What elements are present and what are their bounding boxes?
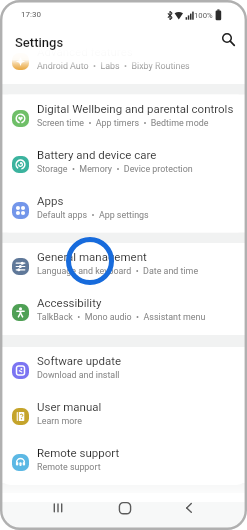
staticText: Accessibility (37, 296, 102, 309)
button[interactable]: Software update (0, 347, 247, 393)
button[interactable] (175, 496, 203, 522)
staticText: 100% (194, 11, 213, 20)
button[interactable]: User manual (0, 393, 247, 439)
staticText: 17:30 (21, 10, 41, 19)
staticText: Storage • Memory • Device protection (37, 164, 193, 174)
button[interactable]: Digital Wellbeing and parental controls (0, 95, 247, 141)
staticText: Download and install (37, 370, 120, 380)
staticText: Android Auto • Labs • Bixby Routines (37, 61, 190, 71)
staticText: TalkBack • Mono audio • Assistant menu (37, 312, 206, 322)
button[interactable]: About phone (0, 494, 247, 530)
button[interactable] (44, 496, 72, 522)
staticText: Software update (37, 354, 122, 367)
button[interactable] (217, 28, 239, 50)
staticText: Battery and device care (37, 148, 157, 161)
button[interactable]: Accessibility (0, 289, 247, 335)
staticText: Settings (15, 35, 64, 50)
button[interactable]: General management (0, 243, 247, 289)
staticText: Screen time • App timers • Bedtime mode (37, 118, 209, 128)
staticText: Learn more (37, 416, 82, 426)
button[interactable]: Advanced features (0, 38, 247, 84)
staticText: Default apps • App settings (37, 210, 149, 220)
button[interactable]: Battery and device care (0, 141, 247, 187)
staticText: Language and keyboard • Date and time (37, 266, 199, 276)
staticText: Remote support (37, 462, 101, 472)
button[interactable]: Apps (0, 187, 247, 233)
staticText: Apps (37, 194, 64, 207)
button[interactable]: Remote support (0, 439, 247, 485)
staticText: Advanced features (37, 45, 133, 58)
staticText: Digital Wellbeing and parental controls (37, 102, 234, 115)
button[interactable] (111, 496, 139, 522)
staticText: User manual (37, 400, 102, 413)
staticText: General management (37, 250, 147, 263)
staticText: Remote support (37, 446, 120, 459)
staticText: About phone (37, 501, 103, 514)
